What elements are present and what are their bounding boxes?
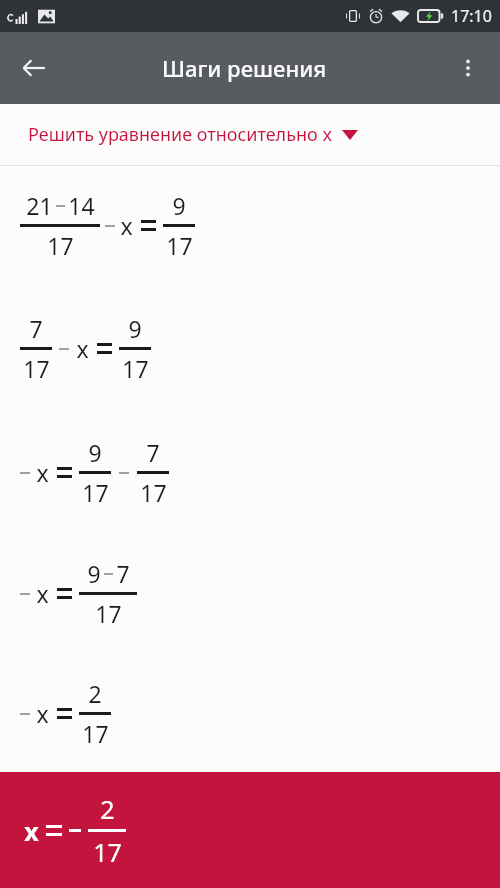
button[interactable]: Назад — [10, 44, 58, 92]
staticText: 17 — [140, 477, 167, 508]
staticText: 2 — [100, 792, 115, 826]
staticText: 7 — [116, 558, 130, 589]
button[interactable]: Решить уравнение относительно x — [0, 104, 500, 165]
staticText: 7 — [146, 437, 160, 468]
staticText: 17 — [23, 353, 50, 384]
staticText: 17 — [47, 230, 74, 261]
staticText: 17 — [82, 477, 109, 508]
button[interactable]: Ещё — [444, 44, 492, 92]
staticText: 9 — [88, 437, 102, 468]
button[interactable]: x — [0, 654, 500, 772]
staticText: x — [76, 333, 89, 364]
button[interactable]: x — [0, 412, 500, 532]
staticText: x — [120, 210, 133, 241]
staticText: 9 — [128, 313, 142, 344]
staticText: 7 — [29, 313, 43, 344]
staticText: 2 — [88, 678, 102, 709]
staticText: 17:10 — [451, 5, 492, 27]
staticText: 17 — [122, 353, 149, 384]
button[interactable]: 21 — [0, 166, 500, 284]
button[interactable]: x — [0, 532, 500, 654]
staticText: x — [36, 578, 49, 609]
staticText: x — [36, 698, 49, 729]
staticText: Шаги решения — [162, 53, 327, 83]
staticText: x — [36, 457, 49, 488]
staticText: 17 — [95, 598, 122, 629]
staticText: 9 — [172, 190, 186, 221]
staticText: Решить уравнение относительно x — [28, 122, 332, 147]
staticText: x — [24, 814, 39, 848]
staticText: 17 — [82, 718, 109, 749]
button[interactable]: x — [0, 772, 500, 888]
button[interactable]: 7 — [0, 284, 500, 412]
staticText: 17 — [166, 230, 193, 261]
staticText: 21 — [26, 190, 53, 221]
staticText: 14 — [68, 190, 95, 221]
staticText: 9 — [87, 558, 101, 589]
staticText: 17 — [93, 835, 122, 869]
